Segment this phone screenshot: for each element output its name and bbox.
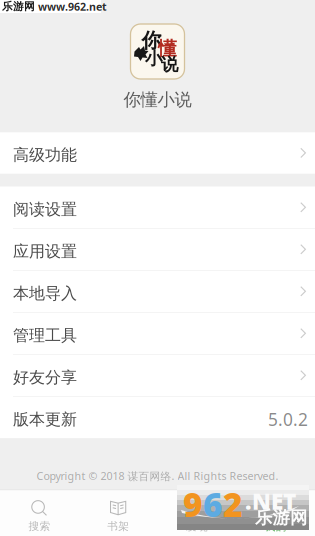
staticText: 小 <box>145 48 162 69</box>
button[interactable]: 搜索 <box>0 500 79 533</box>
button[interactable]: 书架 <box>79 500 158 533</box>
staticText: 你 <box>141 28 161 53</box>
staticText: 应用设置 <box>13 242 77 261</box>
staticText: 乐游网 <box>2 0 35 13</box>
staticText: 说 <box>161 54 178 75</box>
button[interactable]: 应用设置 <box>0 229 315 270</box>
staticText: 5.0.2 <box>268 408 308 431</box>
staticText: 好友分享 <box>13 368 77 387</box>
button[interactable]: 管理工具 <box>0 313 315 354</box>
button[interactable]: 阅读设置 <box>0 187 315 228</box>
staticText: 本地导入 <box>13 284 77 303</box>
staticText: 6 <box>203 482 223 526</box>
button[interactable]: 高级功能 <box>0 132 315 174</box>
staticText: 阅读设置 <box>13 200 77 219</box>
staticText: 高级功能 <box>13 145 77 165</box>
staticText: 版本更新 <box>13 410 77 429</box>
staticText: 发现 <box>186 520 208 533</box>
staticText: 你懂小说 <box>123 89 191 110</box>
button[interactable]: 版本更新 <box>0 397 315 438</box>
button[interactable]: 本地导入 <box>0 271 315 312</box>
staticText: 书架 <box>107 520 129 533</box>
button[interactable]: 好友分享 <box>0 355 315 396</box>
staticText: 搜索 <box>28 520 50 533</box>
staticText: 9 <box>183 482 203 526</box>
button[interactable]: 发现 <box>157 499 236 533</box>
staticText: 乐 <box>255 507 272 528</box>
staticText: www.962.net <box>38 0 107 14</box>
staticText: 游 <box>272 507 289 528</box>
staticText: Copyright © 2018 谋百网络. All Rights Reserv… <box>36 469 278 483</box>
staticText: .NET <box>245 486 296 516</box>
staticText: 网 <box>290 507 307 528</box>
staticText: 2 <box>223 482 243 526</box>
staticText: 懂 <box>158 37 177 60</box>
staticText: 我的 <box>265 520 287 533</box>
button[interactable]: 我的 <box>236 499 315 533</box>
staticText: 管理工具 <box>13 326 77 345</box>
